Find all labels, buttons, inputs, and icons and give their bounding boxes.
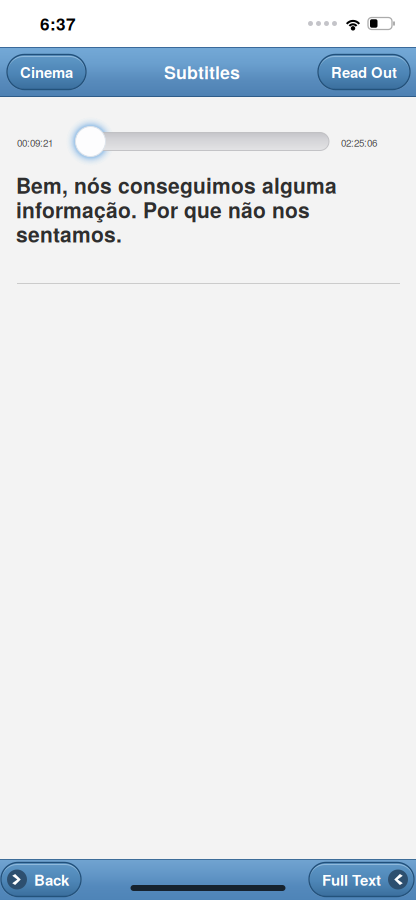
button[interactable]: Full Text xyxy=(309,862,416,896)
staticText: Back xyxy=(34,869,69,890)
staticText: Read Out xyxy=(331,61,397,83)
staticText: 6:37 xyxy=(40,11,76,36)
button[interactable]: Cinema xyxy=(0,54,86,89)
staticText: 00:09:21 xyxy=(17,135,53,149)
staticText: 02:25:06 xyxy=(341,135,377,149)
staticText: Full Text xyxy=(322,869,381,890)
button[interactable]: Read Out xyxy=(318,54,416,89)
staticText: Subtitles xyxy=(164,59,240,85)
staticText: Bem, nós conseguimos alguma informação. … xyxy=(16,173,337,246)
staticText: Cinema xyxy=(20,61,73,83)
button[interactable]: Back xyxy=(0,862,81,896)
